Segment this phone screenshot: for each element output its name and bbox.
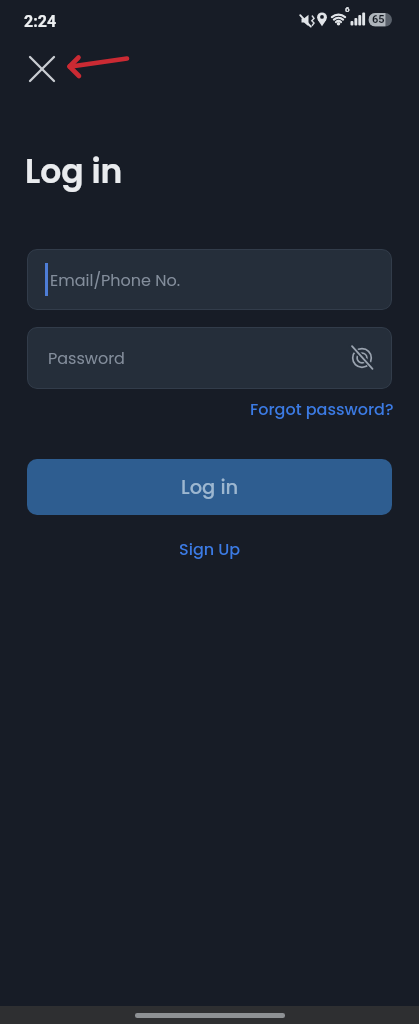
staticText: 6 — [345, 5, 350, 14]
button[interactable]: Forgot password? — [250, 398, 394, 420]
staticText: Password — [48, 347, 125, 369]
staticText: Email/Phone No. — [50, 269, 181, 291]
button[interactable]: Sign Up — [179, 538, 241, 560]
button[interactable]: Email/Phone No. — [27, 249, 392, 310]
button[interactable]: Password — [27, 327, 392, 389]
staticText: Log in — [25, 148, 123, 194]
staticText: Log in — [181, 474, 239, 501]
staticText: 65 — [372, 13, 385, 26]
button[interactable]: Log in — [27, 459, 392, 515]
button[interactable] — [27, 54, 57, 84]
staticText: 2:24 — [24, 12, 57, 31]
button[interactable] — [348, 344, 376, 372]
